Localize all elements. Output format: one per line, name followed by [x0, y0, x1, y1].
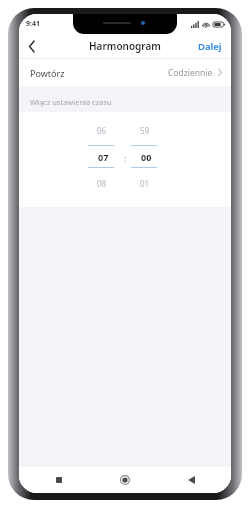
staticText: 07 [98, 151, 109, 163]
staticText: Harmonogram [89, 39, 161, 53]
button[interactable]: Back [181, 470, 201, 490]
button[interactable]: Dalej [189, 34, 231, 58]
button[interactable]: 00 [128, 150, 164, 164]
staticText: : [124, 152, 127, 164]
staticText: 59 [140, 125, 150, 136]
staticText: 08 [97, 178, 107, 189]
staticText: 9:41 [26, 19, 40, 29]
staticText: 06 [97, 125, 107, 136]
staticText: Powtórz [30, 67, 65, 79]
button[interactable]: Powtórz [19, 59, 231, 86]
staticText: Włącz ustawienia czasu [30, 97, 112, 107]
staticText: Dalej [198, 40, 222, 53]
button[interactable]: Back [19, 34, 45, 58]
button[interactable]: 07 [85, 150, 121, 164]
button[interactable]: Recent apps [49, 470, 69, 490]
staticText: 00 [141, 151, 152, 163]
staticText: 01 [140, 178, 150, 189]
staticText: Codziennie [168, 67, 213, 79]
button[interactable]: Home [115, 470, 135, 490]
